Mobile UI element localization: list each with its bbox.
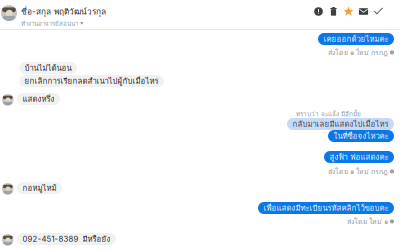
button[interactable]: Mark as unread xyxy=(358,6,369,17)
staticText: ชื่อ-สกุล พฤติวัฒน์วรกุล xyxy=(21,5,106,18)
button[interactable]: Delete xyxy=(328,6,339,17)
button[interactable]: Report spam xyxy=(313,6,324,17)
staticText: แสดงหรึ่ง xyxy=(22,93,54,105)
staticText: สูงฟ้า พ่อแสดงคะ xyxy=(329,151,388,163)
staticText: บ้านไม่ได้นอน xyxy=(24,62,71,74)
staticText: ส่งโดย ๑ ใหม่ กรกฎ xyxy=(328,166,388,177)
staticText: กลับมาเลยมีแสดงไปเมื่อไหร xyxy=(292,118,388,130)
staticText: ส่งโดย ใหม่ ๑ xyxy=(347,216,388,227)
staticText: เพื่อแสดงมีทะเบียนรหัสคลิกไว้ขอบคะ xyxy=(263,202,388,214)
staticText: ทำงานอาจารย์สอนนา xyxy=(21,19,78,28)
staticText: ในที่ซื่อจงไหวคะ xyxy=(333,130,388,142)
staticText: กอหมูไหม้ xyxy=(22,182,56,194)
button[interactable]: Mark as done xyxy=(373,6,384,17)
staticText: ส่งโดย ๑ ใหม่ กรกฎ xyxy=(328,47,388,58)
staticText: ยกเลิกการเรียกลดสำเนาไปผู้กับเมื่อไหร xyxy=(24,75,158,87)
staticText: เคยออกด้วยไหมคะ xyxy=(323,33,388,45)
staticText: ทราบว่า จะแจ้ง มีอีกมั้ย xyxy=(296,109,361,119)
staticText: 092-451-8389 มีหรือยัง xyxy=(22,233,110,245)
button[interactable]: Star xyxy=(343,6,354,17)
